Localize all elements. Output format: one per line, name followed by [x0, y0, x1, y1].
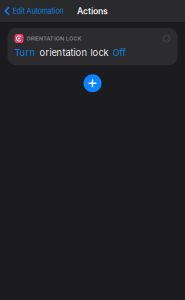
staticText: orientation lock [39, 47, 108, 58]
staticText: ORIENTATION LOCK [26, 35, 82, 42]
staticText: Edit Automation [12, 7, 63, 15]
button[interactable]: ORIENTATION LOCK [7, 28, 177, 65]
staticText: Off [112, 47, 125, 58]
staticText: Actions [77, 6, 108, 16]
staticText: Turn [14, 47, 35, 58]
button[interactable]: Add action [83, 74, 101, 92]
button[interactable]: Edit Automation [0, 1, 63, 21]
